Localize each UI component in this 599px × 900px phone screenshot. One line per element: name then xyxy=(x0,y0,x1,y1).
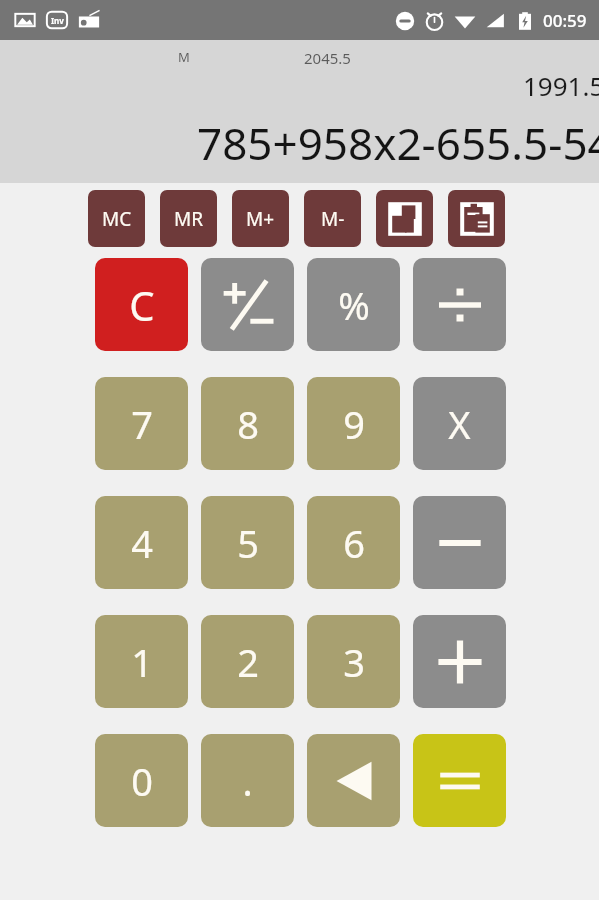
button[interactable]: 8 xyxy=(201,377,294,470)
button[interactable]: . xyxy=(201,734,294,827)
staticText: 8 xyxy=(237,398,259,450)
staticText: 5 xyxy=(237,517,259,569)
button[interactable]: Paste xyxy=(448,190,505,247)
staticText: MC xyxy=(102,206,132,232)
staticText: 3 xyxy=(343,636,365,688)
button[interactable]: MR xyxy=(160,190,217,247)
button[interactable] xyxy=(413,258,506,351)
button[interactable]: X xyxy=(413,377,506,470)
button[interactable] xyxy=(413,734,506,827)
button[interactable] xyxy=(413,615,506,708)
button[interactable]: 4 xyxy=(95,496,188,589)
button[interactable]: 9 xyxy=(307,377,400,470)
staticText: 6 xyxy=(343,517,365,569)
button[interactable]: 5 xyxy=(201,496,294,589)
staticText: 0 xyxy=(131,755,153,807)
button[interactable]: 3 xyxy=(307,615,400,708)
staticText: 1 xyxy=(131,636,153,688)
staticText: 7 xyxy=(131,398,153,450)
button[interactable] xyxy=(413,496,506,589)
button[interactable]: 1 xyxy=(95,615,188,708)
staticText: % xyxy=(338,279,370,331)
button[interactable]: C xyxy=(95,258,188,351)
button[interactable]: MC xyxy=(88,190,145,247)
button[interactable]: 6 xyxy=(307,496,400,589)
staticText: 2045.5 xyxy=(304,48,351,68)
staticText: X xyxy=(448,398,471,450)
staticText: 1991.5 xyxy=(523,68,599,103)
staticText: MR xyxy=(174,206,204,232)
button[interactable]: 2 xyxy=(201,615,294,708)
button[interactable] xyxy=(201,258,294,351)
button[interactable]: Backspace xyxy=(307,734,400,827)
staticText: 00:59 xyxy=(543,9,587,32)
staticText: C xyxy=(129,278,155,332)
button[interactable]: Copy xyxy=(376,190,433,247)
staticText: 9 xyxy=(343,398,365,450)
staticText: . xyxy=(242,755,253,807)
staticText: M+ xyxy=(246,206,275,232)
staticText: 4 xyxy=(131,517,153,569)
button[interactable]: % xyxy=(307,258,400,351)
staticText: 2 xyxy=(237,636,259,688)
button[interactable]: 0 xyxy=(95,734,188,827)
button[interactable]: M+ xyxy=(232,190,289,247)
staticText: Inv xyxy=(51,15,64,26)
staticText: 785+958x2-655.5-54 xyxy=(197,113,599,173)
staticText: M xyxy=(178,48,190,66)
staticText: M- xyxy=(321,206,345,232)
button[interactable]: 7 xyxy=(95,377,188,470)
button[interactable]: M- xyxy=(304,190,361,247)
